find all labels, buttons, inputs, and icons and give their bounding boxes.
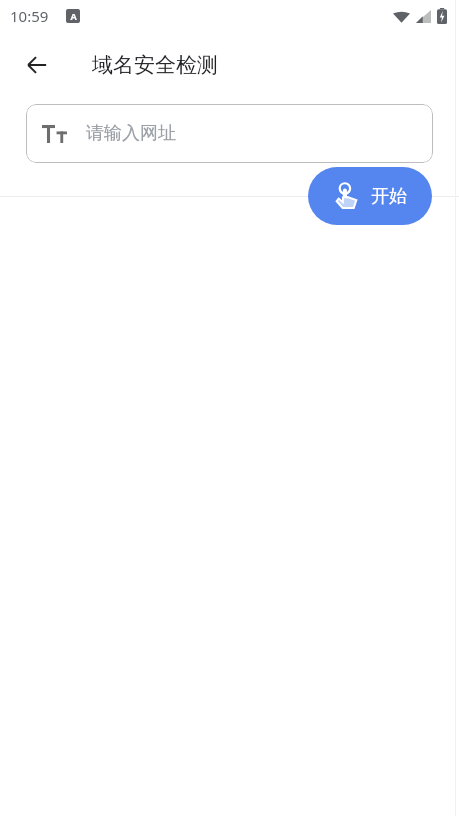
staticText: 请输入网址 xyxy=(86,122,176,145)
button[interactable]: 请输入网址 xyxy=(26,104,433,163)
staticText: A xyxy=(70,10,77,22)
staticText: 开始 xyxy=(371,185,407,208)
button[interactable]: Back xyxy=(13,41,61,89)
staticText: 域名安全检测 xyxy=(92,52,218,78)
staticText: 10:59 xyxy=(10,6,49,26)
button[interactable]: 开始 xyxy=(308,167,432,225)
